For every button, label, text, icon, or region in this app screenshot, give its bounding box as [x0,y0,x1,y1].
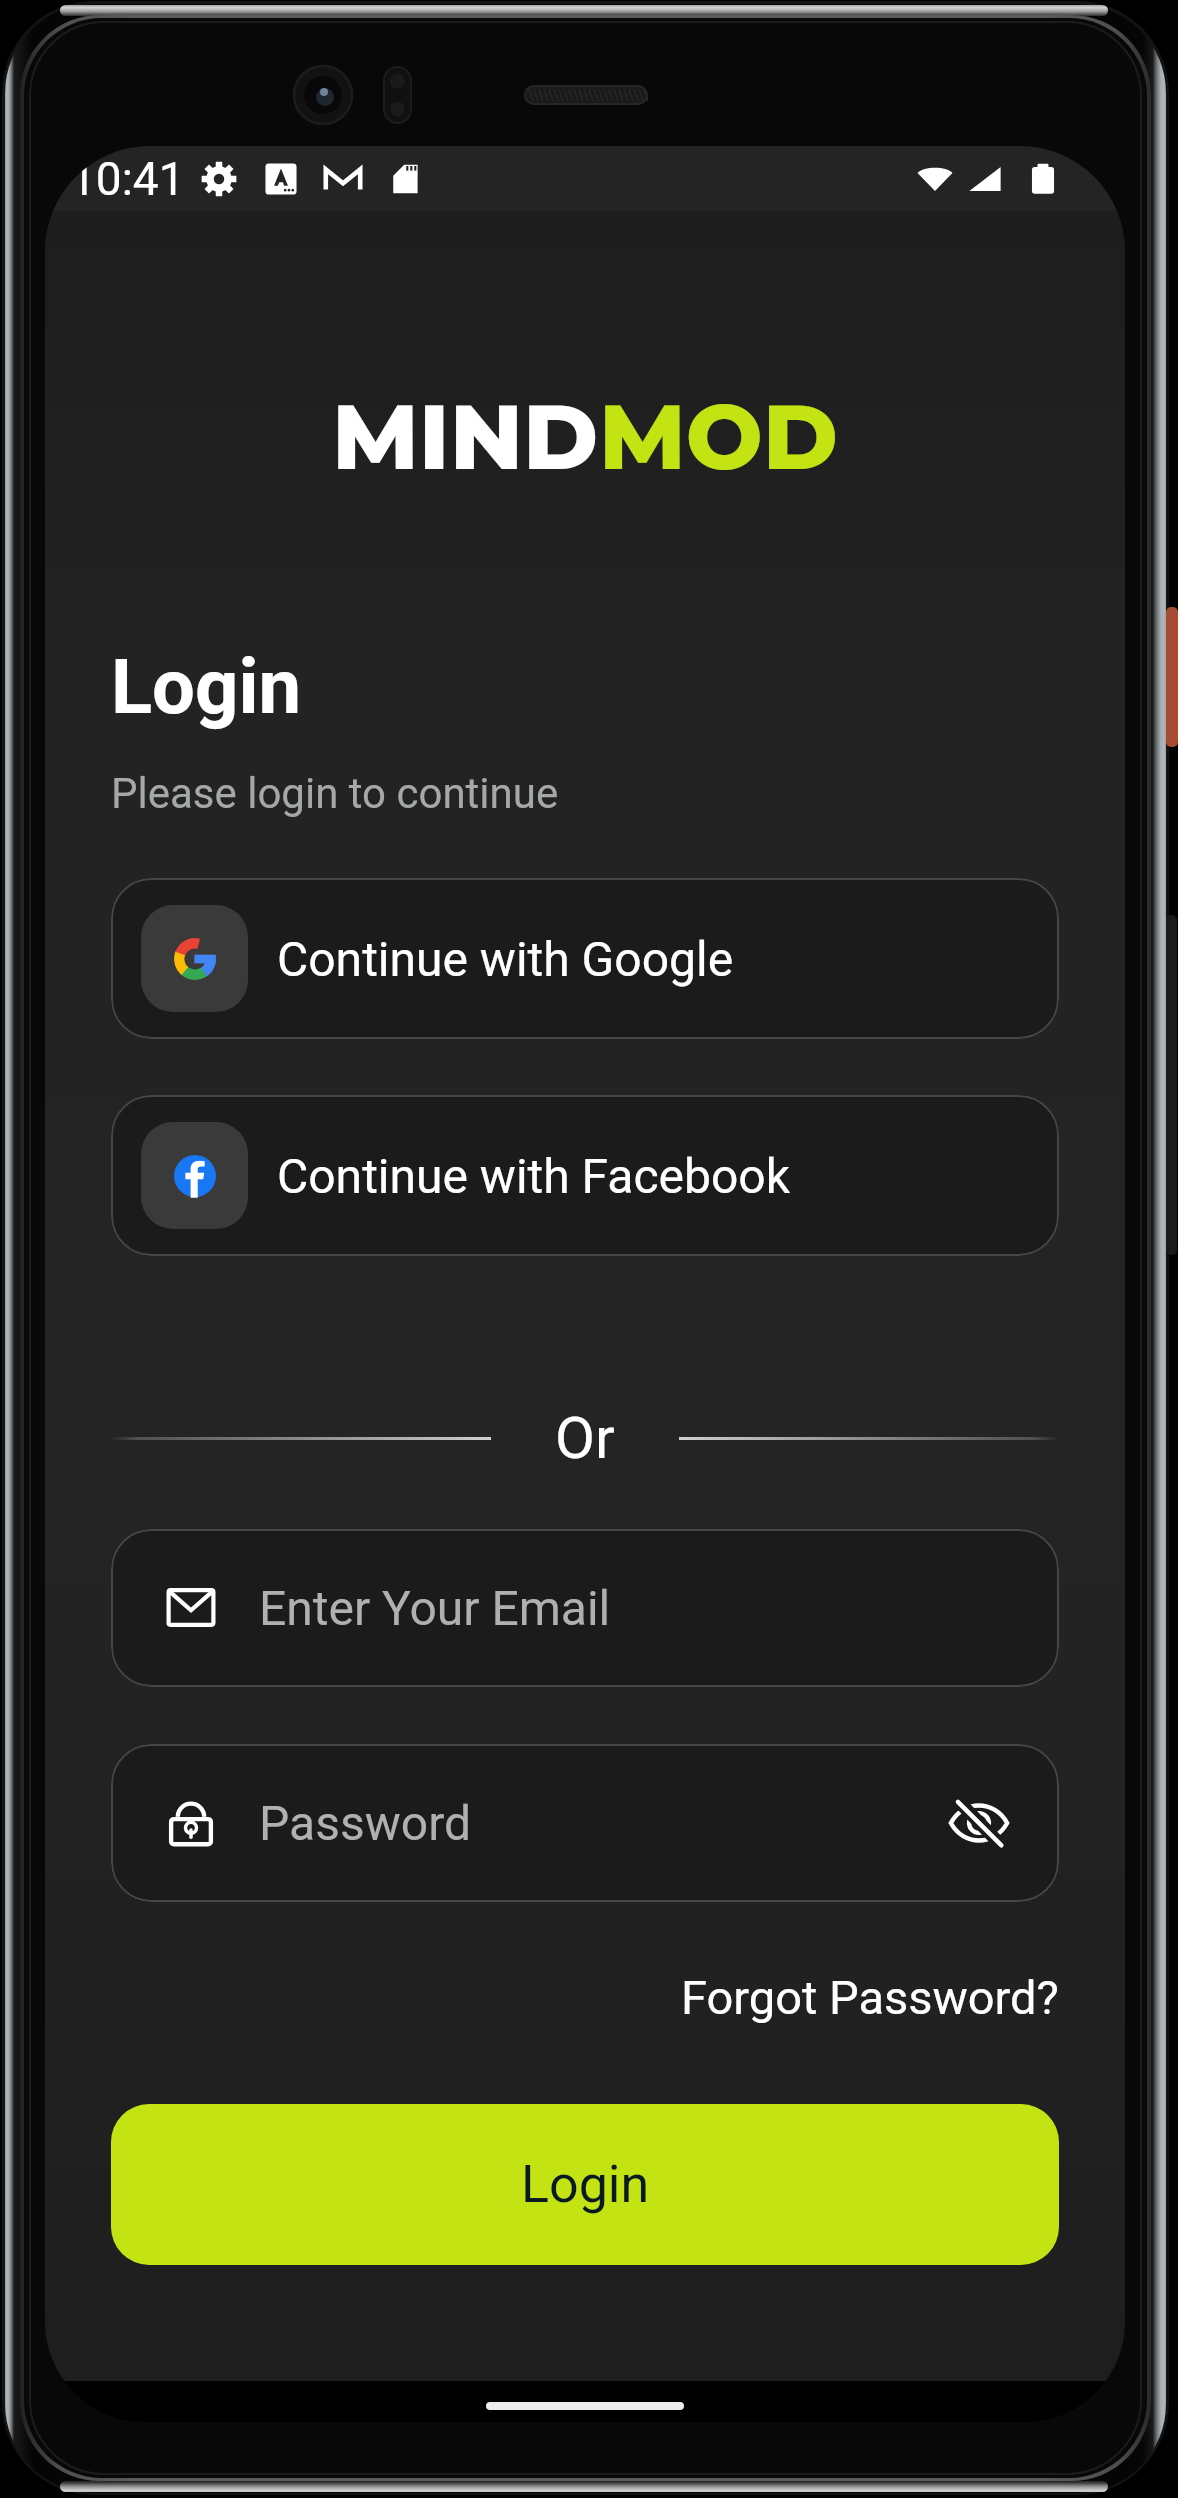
button[interactable]: Continue with Google [111,878,1059,1039]
button[interactable]: Password [111,1744,1059,1902]
staticText: MOD [599,381,838,492]
staticText: Login [111,642,302,731]
staticText: Please login to continue [111,769,559,818]
staticText: 10:41 [70,152,185,206]
staticText: Forgot Password? [681,1970,1059,2024]
staticText: Password [259,1795,472,1851]
button[interactable]: Forgot Password? [681,1970,1059,2024]
staticText: Enter Your Email [259,1580,611,1636]
button[interactable]: Enter Your Email [111,1529,1059,1687]
staticText: Continue with Facebook [277,1148,791,1204]
button[interactable]: Show password [947,1791,1011,1855]
button[interactable]: Continue with Facebook [111,1095,1059,1256]
staticText: Login [521,2154,650,2215]
staticText: Continue with Google [277,931,734,987]
button[interactable]: Login [111,2104,1059,2265]
staticText: MIND [332,381,599,492]
staticText: Or [555,1404,615,1472]
